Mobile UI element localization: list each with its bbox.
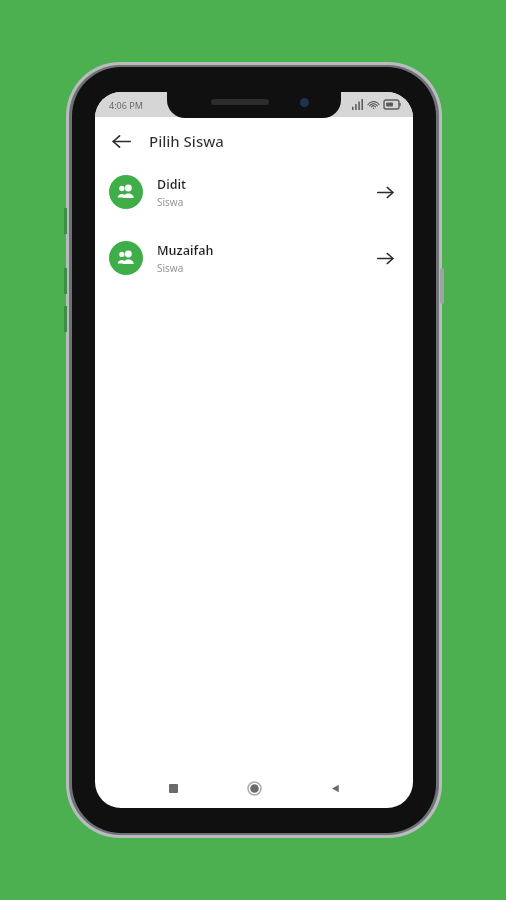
staticText: Muzaifah [157,242,214,259]
staticText: Pilih Siswa [149,131,224,151]
staticText: 4:06 PM [109,99,143,111]
button[interactable]: Didit [95,165,413,219]
button[interactable]: Muzaifah [95,231,413,285]
button[interactable]: Home [239,773,269,803]
staticText: Siswa [157,261,184,275]
button[interactable]: Back [103,123,139,159]
button[interactable]: Recents [158,773,188,803]
button[interactable]: Back [320,773,350,803]
staticText: Siswa [157,195,184,209]
staticText: Didit [157,176,187,193]
